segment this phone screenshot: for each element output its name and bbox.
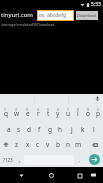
button[interactable]: 6 [53, 107, 63, 122]
staticText: , [19, 156, 21, 164]
staticText: y [56, 109, 60, 118]
button[interactable]: 1 [0, 107, 11, 122]
button[interactable]: b [53, 137, 63, 152]
button[interactable]: 9 [83, 107, 93, 122]
button[interactable]: s [14, 122, 24, 137]
staticText: 7 [67, 107, 70, 112]
staticText: o [86, 109, 90, 118]
staticText: 5 [47, 107, 50, 112]
staticText: 6 [57, 107, 60, 112]
button[interactable]: 7 [63, 107, 73, 122]
staticText: ?123 [3, 157, 13, 163]
staticText: . [79, 156, 81, 164]
button[interactable]: v [43, 137, 53, 152]
button[interactable]: Switch keyboard [87, 169, 99, 181]
staticText: tinyurl.com [1, 11, 33, 19]
staticText: 3 [26, 107, 29, 112]
staticText: 1 [4, 107, 7, 112]
button[interactable]: f [34, 122, 44, 137]
button[interactable]: l [88, 122, 99, 137]
staticText: m [75, 140, 82, 149]
staticText: u [66, 109, 71, 118]
button[interactable]: Recent apps [72, 168, 87, 183]
staticText: c [36, 140, 40, 149]
button[interactable]: Voice input [93, 94, 102, 103]
staticText: l [93, 125, 95, 134]
staticText: w [14, 109, 20, 118]
staticText: 8 [77, 107, 80, 112]
staticText: t [47, 109, 50, 118]
button[interactable]: n [63, 137, 73, 152]
staticText: 0 [97, 107, 100, 112]
button[interactable]: j [66, 122, 77, 137]
staticText: n [66, 140, 71, 149]
button[interactable]: 0 [93, 107, 103, 122]
staticText: f [38, 125, 41, 134]
staticText: 9 [87, 107, 90, 112]
staticText: 4 [37, 107, 40, 112]
button[interactable]: 4 [33, 107, 43, 122]
staticText: k [81, 125, 85, 134]
button[interactable]: c [33, 137, 43, 152]
staticText: v [46, 140, 50, 149]
button[interactable]: Back [14, 168, 29, 183]
staticText: x [26, 140, 30, 149]
button[interactable]: Shift [0, 137, 11, 152]
staticText: s [17, 125, 21, 134]
staticText: q [4, 109, 8, 118]
staticText: r [37, 109, 40, 118]
button[interactable]: Download [76, 11, 98, 20]
button[interactable]: 3 [22, 107, 33, 122]
button[interactable]: 2 [11, 107, 22, 122]
staticText: 5:53 [91, 1, 101, 8]
staticText: h [58, 125, 63, 134]
button[interactable]: Go [89, 154, 100, 165]
staticText: /storage/emulated/0/Download [1, 22, 55, 27]
button[interactable]: z [11, 137, 22, 152]
button[interactable]: d [24, 122, 34, 137]
staticText: z [15, 140, 19, 149]
button[interactable]: h [55, 122, 66, 137]
staticText: p [96, 109, 100, 118]
staticText: b [56, 140, 60, 149]
button[interactable]: , [15, 152, 24, 167]
button[interactable]: a [4, 122, 14, 137]
button[interactable]: . [74, 152, 86, 167]
button[interactable]: ?123 [0, 152, 15, 167]
staticText: d [27, 125, 31, 134]
staticText: Download [77, 13, 97, 18]
button[interactable]: k [77, 122, 88, 137]
staticText: ex. abcdefg [39, 12, 66, 19]
button[interactable]: x [22, 137, 33, 152]
staticText: j [71, 125, 73, 134]
button[interactable]: Backspace [83, 137, 103, 152]
staticText: e [26, 109, 30, 118]
button[interactable]: m [73, 137, 83, 152]
button[interactable]: g [44, 122, 55, 137]
button[interactable]: Home [44, 168, 59, 183]
staticText: a [7, 125, 11, 134]
button[interactable]: 8 [73, 107, 83, 122]
button[interactable]: ex. abcdefg [38, 11, 73, 20]
staticText: g [48, 125, 52, 134]
staticText: 2 [15, 107, 18, 112]
button[interactable]: 5 [43, 107, 53, 122]
staticText: i [77, 109, 79, 118]
